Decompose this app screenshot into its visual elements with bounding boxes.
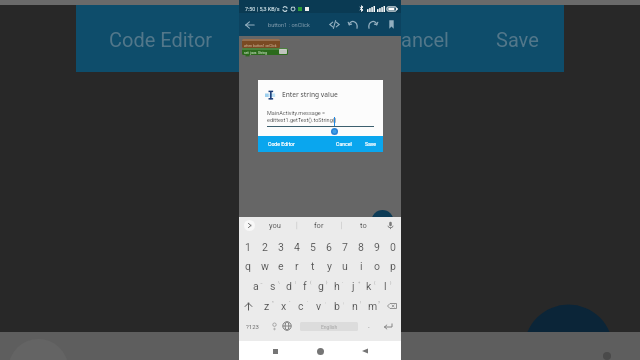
staticText: edittext1.getText().toString() xyxy=(267,117,337,123)
button[interactable]: w xyxy=(256,256,273,276)
staticText: when button1 onClick xyxy=(244,44,277,48)
staticText: English xyxy=(321,324,338,330)
button[interactable]: 0 xyxy=(385,237,401,257)
button[interactable]: l xyxy=(377,276,393,296)
button[interactable]: r xyxy=(289,256,305,276)
staticText: m xyxy=(368,300,378,312)
button[interactable]: k xyxy=(361,276,377,296)
staticText: Code Editor xyxy=(109,28,213,51)
staticText: ~ xyxy=(260,280,263,285)
button[interactable]: 7 xyxy=(337,237,353,257)
staticText: x xyxy=(281,300,287,312)
button[interactable]: c xyxy=(292,296,310,316)
button[interactable]: y xyxy=(321,256,337,276)
button[interactable]: Emoji xyxy=(267,319,281,333)
button[interactable]: to xyxy=(360,221,367,230)
button[interactable]: t xyxy=(305,256,321,276)
button[interactable]: Back xyxy=(241,13,259,36)
staticText: to xyxy=(360,221,367,230)
button[interactable]: m xyxy=(364,296,382,316)
button[interactable]: j xyxy=(345,276,361,296)
button[interactable]: f xyxy=(297,276,313,296)
staticText: w xyxy=(261,260,269,272)
staticText: ; xyxy=(343,300,344,305)
staticText: f xyxy=(303,280,307,292)
button[interactable]: Expand suggestions xyxy=(244,220,255,231)
button[interactable]: when button1 onClick xyxy=(242,39,280,48)
staticText: Enter string value xyxy=(282,90,338,99)
button[interactable]: Redo xyxy=(363,13,382,36)
button[interactable]: 3 xyxy=(273,237,289,257)
staticText: button1 : onClick xyxy=(268,22,310,29)
button[interactable]: Change language xyxy=(280,319,294,333)
button[interactable]: Back xyxy=(356,342,374,360)
staticText: d xyxy=(286,280,292,292)
staticText: Save xyxy=(496,28,539,51)
staticText: MainActivity.message = xyxy=(267,110,326,116)
staticText: s xyxy=(270,280,276,292)
button[interactable]: i xyxy=(353,256,369,276)
staticText: : xyxy=(325,300,326,305)
button[interactable]: s xyxy=(264,276,281,296)
button[interactable]: v xyxy=(310,296,328,316)
staticText: p xyxy=(390,260,396,272)
button[interactable]: Enter xyxy=(382,320,394,332)
button[interactable]: o xyxy=(369,256,385,276)
button[interactable]: h xyxy=(329,276,345,296)
button[interactable]: a xyxy=(247,276,264,296)
button[interactable]: x xyxy=(275,296,292,316)
staticText: - xyxy=(342,280,344,285)
staticText: g xyxy=(318,280,324,292)
button[interactable]: 6 xyxy=(321,237,337,257)
staticText: n xyxy=(352,300,358,312)
button[interactable]: Cancel xyxy=(336,141,352,147)
button[interactable]: 4 xyxy=(289,237,305,257)
button[interactable]: Home xyxy=(311,342,329,360)
button[interactable]: p xyxy=(385,256,401,276)
button[interactable]: 5 xyxy=(305,237,321,257)
button[interactable]: q xyxy=(239,256,256,276)
button[interactable]: d xyxy=(281,276,297,296)
button[interactable]: Backspace xyxy=(382,296,401,316)
staticText: " xyxy=(289,300,291,305)
button[interactable]: 2 xyxy=(256,237,273,257)
button[interactable]: ?123 xyxy=(243,316,262,336)
button[interactable]: n xyxy=(346,296,364,316)
button[interactable]: e xyxy=(273,256,289,276)
staticText: ' xyxy=(307,300,308,305)
button[interactable]: 9 xyxy=(369,237,385,257)
staticText: y xyxy=(327,260,332,272)
staticText: l xyxy=(384,280,387,292)
staticText: a xyxy=(253,280,259,292)
staticText: ! xyxy=(360,300,362,305)
staticText: \ xyxy=(278,280,280,285)
button[interactable]: English xyxy=(300,322,358,331)
button[interactable]: Undo xyxy=(344,13,363,36)
button[interactable]: Save xyxy=(365,141,377,147)
button[interactable]: b xyxy=(328,296,346,316)
button[interactable]: . xyxy=(363,320,375,332)
button[interactable]: Code Editor xyxy=(268,141,295,147)
button[interactable]: g xyxy=(313,276,329,296)
staticText: e xyxy=(278,260,284,272)
staticText: j xyxy=(352,280,355,292)
staticText: } xyxy=(326,280,328,285)
staticText: r xyxy=(295,260,299,272)
button[interactable]: u xyxy=(337,256,353,276)
button[interactable]: 8 xyxy=(353,237,369,257)
staticText: u xyxy=(342,260,348,272)
button[interactable]: for xyxy=(314,221,324,230)
button[interactable]: Voice input xyxy=(385,220,396,231)
button[interactable]: Shift xyxy=(239,296,258,316)
button[interactable]: Save xyxy=(382,13,401,36)
button[interactable]: z xyxy=(258,296,275,316)
button[interactable]: set java String xyxy=(242,48,288,55)
staticText: t xyxy=(311,260,315,272)
button[interactable]: you xyxy=(269,221,281,230)
button[interactable]: Recent apps xyxy=(266,342,284,360)
button[interactable]: 1 xyxy=(239,237,256,257)
staticText: ) xyxy=(390,280,392,285)
staticText: v xyxy=(316,300,322,312)
staticText: 7:50 | 5,3 KB/s xyxy=(245,6,280,12)
button[interactable]: Code xyxy=(325,13,344,36)
